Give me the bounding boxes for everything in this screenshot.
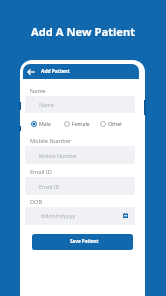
button[interactable]: Other	[100, 119, 123, 128]
staticText: Mobile Number	[39, 152, 78, 159]
staticText: Email ID	[30, 168, 52, 176]
staticText: DOB	[30, 198, 43, 206]
button[interactable]: Mobile Number	[25, 146, 135, 164]
staticText: Save Patient	[70, 238, 99, 244]
staticText: Add A New Patient	[31, 24, 136, 39]
button[interactable]: Female	[64, 119, 90, 128]
staticText: Name	[39, 101, 54, 108]
staticText: Other	[108, 120, 123, 127]
button[interactable]: Email ID	[25, 177, 135, 195]
button[interactable]: Male	[31, 119, 51, 128]
staticText: Name	[30, 87, 46, 95]
button[interactable]: Save Patient	[32, 234, 133, 250]
staticText: Email ID	[39, 183, 60, 190]
staticText: Male	[39, 120, 51, 127]
staticText: Female	[72, 120, 90, 127]
staticText: Add Patient	[41, 68, 70, 75]
button[interactable]: Back	[24, 64, 37, 79]
other: Pick date	[123, 213, 128, 218]
button[interactable]: Name	[25, 96, 135, 113]
staticText: dd/mm/yyyy	[41, 212, 76, 220]
staticText: Mobile Number	[30, 137, 72, 145]
button[interactable]: dd/mm/yyyy	[25, 207, 135, 225]
